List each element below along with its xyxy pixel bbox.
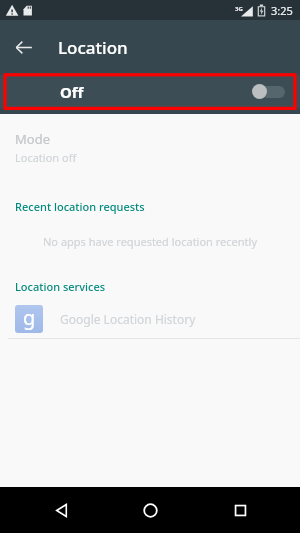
staticText: Mode <box>15 130 50 148</box>
staticText: Location services <box>15 279 106 294</box>
button[interactable]: Home <box>121 487 179 533</box>
button[interactable]: Mode <box>0 128 300 167</box>
button[interactable]: Recent apps <box>211 487 269 533</box>
button[interactable]: Back <box>0 24 46 70</box>
button[interactable]: Back <box>32 487 90 533</box>
staticText: Location <box>58 36 128 59</box>
button[interactable]: g <box>0 300 300 338</box>
staticText: 3:25 <box>271 3 293 18</box>
staticText: Off <box>60 82 84 102</box>
staticText: Location off <box>15 150 77 165</box>
button[interactable]: Off <box>0 75 300 108</box>
staticText: No apps have requested location recently <box>14 234 286 249</box>
staticText: 3G <box>235 5 243 13</box>
staticText: g <box>23 305 36 331</box>
staticText: Google Location History <box>60 311 196 327</box>
staticText: Recent location requests <box>15 199 145 214</box>
